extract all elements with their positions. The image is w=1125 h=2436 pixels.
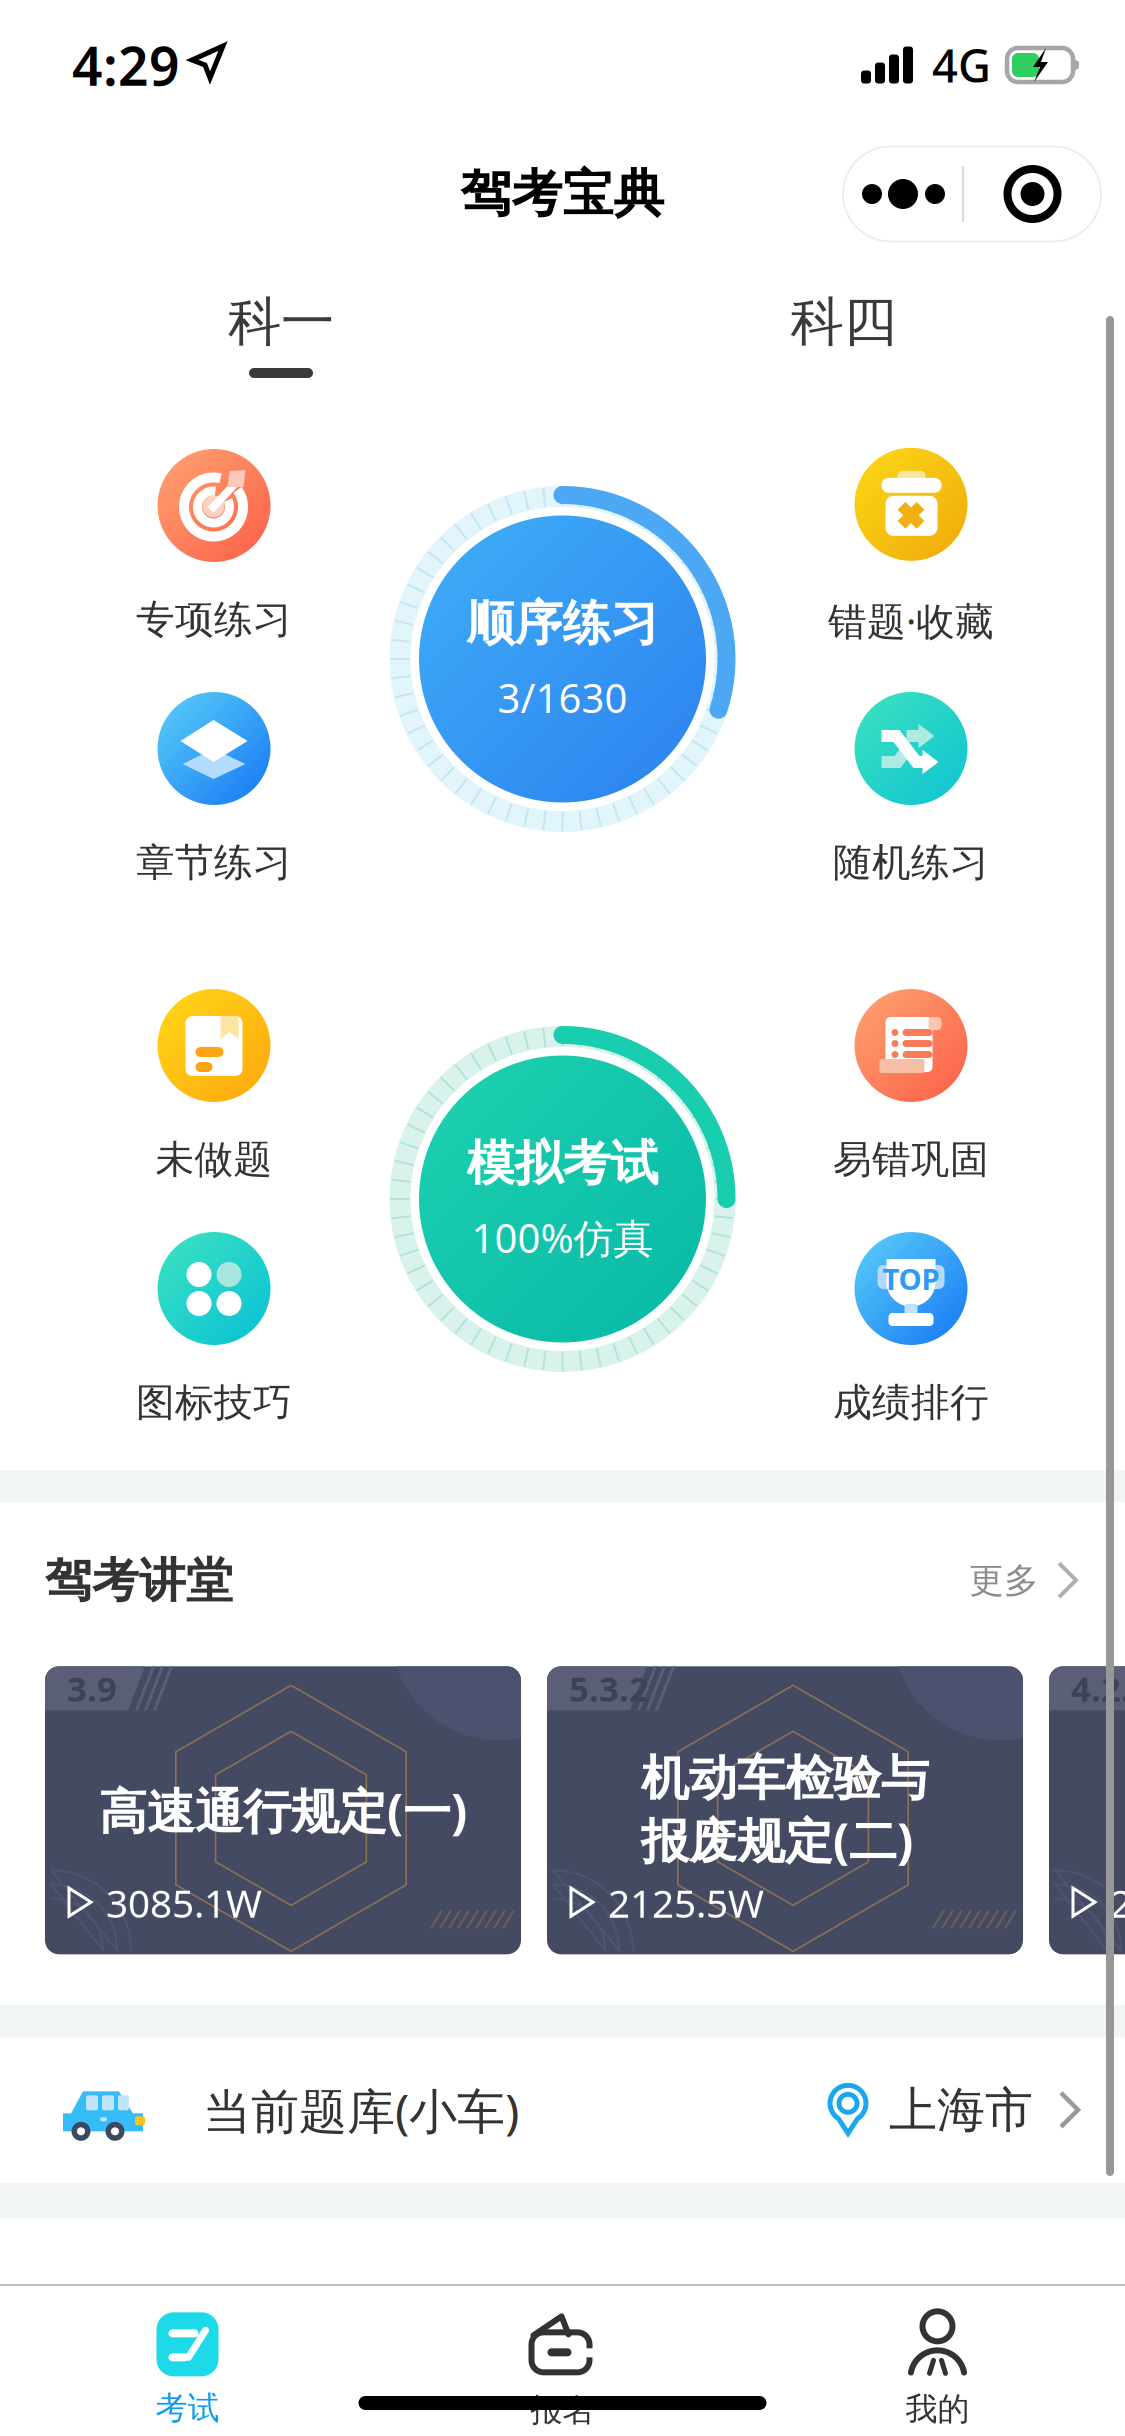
staticText: TOP	[882, 1259, 939, 1298]
button[interactable]: TOP	[791, 1232, 1031, 1428]
button[interactable]: 报名	[375, 2310, 750, 2430]
staticText: 驾考讲堂	[45, 1552, 233, 1609]
staticText: 高速通行规定(一)	[99, 1778, 467, 1842]
button[interactable]: 顺序练习	[388, 485, 736, 833]
button[interactable]: 更多	[969, 1559, 1079, 1602]
button[interactable]: 3.9	[45, 1666, 521, 1954]
staticText: 我的	[905, 2389, 969, 2429]
staticText: 4:29	[72, 30, 180, 100]
staticText: 5.3.2	[569, 1665, 649, 1711]
staticText: 科四	[790, 289, 896, 355]
button[interactable]: 考试	[0, 2312, 375, 2428]
staticText: 驾考宝典	[460, 163, 664, 225]
button[interactable]: 5.3.2	[547, 1666, 1023, 1954]
staticText: 4G	[932, 35, 991, 95]
staticText: 2125.5W	[608, 1877, 764, 1928]
staticText: 成绩排行	[833, 1379, 989, 1426]
button[interactable]: 4.2.1	[1049, 1666, 1125, 1954]
button[interactable]: 科四	[562, 258, 1125, 386]
staticText: 上海市	[889, 2081, 1033, 2140]
button[interactable]: 章节练习	[94, 692, 334, 888]
button[interactable]: 当前题库(小车)	[0, 2037, 1125, 2183]
button[interactable]: 科一	[0, 258, 562, 386]
staticText: 考试	[155, 2388, 219, 2428]
staticText: 图标技巧	[136, 1379, 292, 1426]
staticText: 随机练习	[833, 839, 989, 886]
button[interactable]: 模拟考试	[388, 1025, 736, 1373]
staticText: 易错巩固	[833, 1136, 989, 1183]
staticText: 3/1630	[497, 671, 627, 724]
button[interactable]: 未做题	[94, 989, 334, 1185]
staticText: 错题·收藏	[828, 595, 994, 646]
staticText: 机动车检验与 报废规定(二)	[641, 1749, 929, 1872]
button[interactable]: 专项练习	[94, 449, 334, 645]
staticText: 2310.8W	[1110, 1877, 1125, 1928]
staticText: 100%仿真	[471, 1211, 653, 1264]
staticText: 专项练习	[136, 596, 292, 643]
staticText: 未做题	[155, 1136, 272, 1183]
button[interactable]: 图标技巧	[94, 1232, 334, 1428]
staticText: 3085.1W	[106, 1877, 262, 1928]
staticText: 4.2.1	[1071, 1665, 1125, 1711]
button[interactable]: More options	[843, 146, 964, 241]
button[interactable]: 我的	[750, 2311, 1125, 2429]
staticText: 科一	[228, 289, 334, 355]
button[interactable]: 易错巩固	[791, 989, 1031, 1185]
staticText: 顺序练习	[466, 594, 658, 653]
staticText: 报名	[530, 2390, 594, 2430]
button[interactable]: 错题·收藏	[791, 449, 1031, 645]
staticText: 章节练习	[136, 839, 292, 886]
button[interactable]: 随机练习	[791, 692, 1031, 888]
button[interactable]: Close mini program	[964, 146, 1101, 241]
staticText: 更多	[969, 1559, 1039, 1602]
staticText: 模拟考试	[466, 1134, 658, 1193]
staticText: 当前题库(小车)	[203, 2078, 519, 2142]
staticText: 3.9	[67, 1665, 117, 1711]
